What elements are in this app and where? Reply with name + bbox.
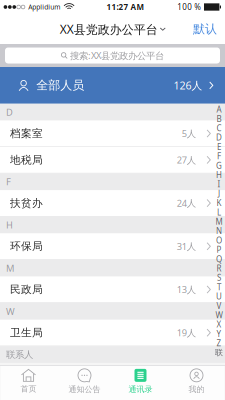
staticText: 环保局 xyxy=(10,240,43,253)
staticText: 扶贫办 xyxy=(10,196,43,210)
staticText: 11:27 AM xyxy=(106,2,144,12)
staticText: C xyxy=(216,123,221,133)
staticText: H xyxy=(216,170,222,180)
button[interactable]: 首页 xyxy=(0,366,56,400)
staticText: 全部人员 xyxy=(36,78,84,93)
staticText: 联 xyxy=(215,348,223,357)
staticText: Y xyxy=(216,328,221,339)
staticText: 126人 xyxy=(173,78,202,92)
staticText: 24人 xyxy=(177,197,196,209)
button[interactable]: Section index xyxy=(213,104,225,366)
staticText: 通讯录 xyxy=(128,384,152,394)
staticText: Q xyxy=(216,254,222,264)
button[interactable]: 搜索:XX县党政办公平台 xyxy=(0,44,225,67)
staticText: O xyxy=(216,235,222,246)
staticText: 民政局 xyxy=(10,283,43,296)
staticText: 地税局 xyxy=(10,153,43,166)
staticText: 5人 xyxy=(182,127,196,140)
staticText: 联系人 xyxy=(6,349,33,360)
staticText: G xyxy=(216,160,222,171)
staticText: K xyxy=(216,198,221,208)
staticText: M xyxy=(6,262,14,274)
button[interactable]: 地税局 xyxy=(0,147,225,173)
staticText: D xyxy=(6,106,13,118)
staticText: 档案室 xyxy=(10,127,43,140)
button[interactable]: 卫生局 xyxy=(0,320,225,346)
staticText: 通知公告 xyxy=(68,384,100,394)
staticText: 搜索:XX县党政办公平台 xyxy=(70,49,164,62)
staticText: L xyxy=(217,207,221,218)
staticText: S xyxy=(217,272,221,283)
staticText: H xyxy=(6,219,13,231)
staticText: J xyxy=(218,188,220,199)
staticText: 13人 xyxy=(177,283,196,296)
staticText: 卫生局 xyxy=(10,326,43,339)
staticText: 首页 xyxy=(20,384,36,394)
staticText: 19人 xyxy=(177,326,196,339)
button[interactable]: 民政局 xyxy=(0,277,225,303)
staticText: 100 % xyxy=(177,2,201,12)
staticText: Z xyxy=(216,338,221,348)
staticText: N xyxy=(216,226,222,236)
staticText: 31人 xyxy=(177,240,196,252)
staticText: 27人 xyxy=(177,154,196,166)
staticText: R xyxy=(216,263,221,274)
staticText: W xyxy=(6,305,15,318)
staticText: M xyxy=(215,216,222,227)
staticText: I xyxy=(217,179,220,189)
staticText: X xyxy=(216,319,221,330)
staticText: V xyxy=(216,300,221,311)
staticText: Applidium xyxy=(28,3,60,11)
staticText: P xyxy=(216,244,221,255)
staticText: T xyxy=(217,282,221,292)
button[interactable]: 环保局 xyxy=(0,233,225,260)
staticText: F xyxy=(217,151,221,161)
staticText: B xyxy=(216,113,221,124)
button[interactable]: 扶贫办 xyxy=(0,190,225,216)
staticText: F xyxy=(6,176,11,188)
staticText: D xyxy=(216,132,222,143)
button[interactable]: 默认 xyxy=(185,14,225,44)
staticText: A xyxy=(216,104,221,115)
staticText: U xyxy=(216,291,222,302)
button[interactable]: 我的 xyxy=(168,366,224,400)
button[interactable]: 通知公告 xyxy=(56,366,112,400)
button[interactable]: 全部人员 xyxy=(0,67,225,104)
staticText: 我的 xyxy=(188,384,204,394)
staticText: E xyxy=(217,141,221,152)
staticText: XX县党政办公平台 xyxy=(60,21,158,37)
staticText: 默认 xyxy=(193,22,217,36)
button[interactable]: 档案室 xyxy=(0,120,225,147)
staticText: W xyxy=(215,310,222,320)
button[interactable]: 通讯录 xyxy=(112,366,168,400)
